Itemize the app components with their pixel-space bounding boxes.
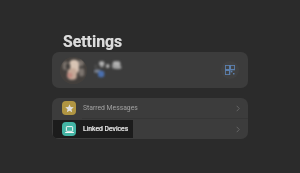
staticText: Linked Devices bbox=[83, 125, 236, 133]
button[interactable]: Linked Devices bbox=[52, 119, 248, 139]
staticText: Settings bbox=[63, 32, 123, 51]
button[interactable]: Starred Messages bbox=[52, 98, 248, 118]
button[interactable]: Show QR code bbox=[221, 61, 239, 79]
button[interactable]: Show QR code bbox=[52, 52, 248, 88]
staticText: Starred Messages bbox=[83, 104, 236, 112]
